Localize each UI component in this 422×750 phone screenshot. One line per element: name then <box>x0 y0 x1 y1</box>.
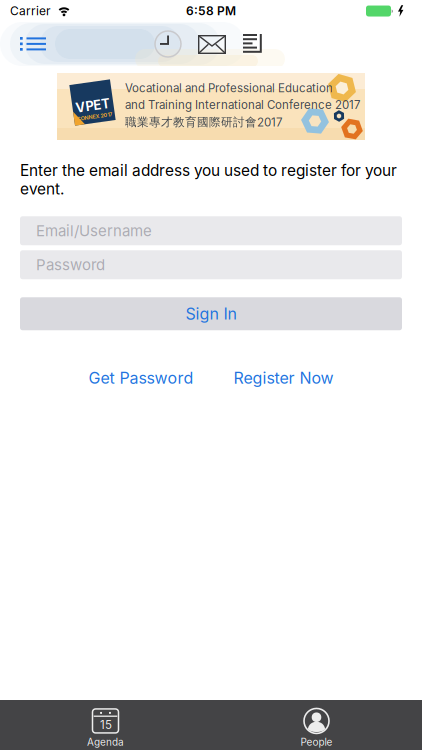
button[interactable]: Register Now <box>233 368 333 388</box>
staticText: 6:58 PM <box>186 4 236 18</box>
staticText: Email/Username <box>36 222 152 240</box>
staticText: Enter the email address you used to regi… <box>20 161 397 198</box>
staticText: 職業專才教育國際研討會2017 <box>125 115 283 129</box>
staticText: and Training International Conference 20… <box>125 98 361 112</box>
button[interactable] <box>0 22 46 52</box>
button[interactable]: Password <box>0 250 422 279</box>
button[interactable] <box>155 31 181 57</box>
staticText: VPET <box>75 98 110 113</box>
button[interactable]: Get Password <box>88 368 193 388</box>
button[interactable]: People <box>211 700 422 750</box>
button[interactable]: Email/Username <box>0 216 422 245</box>
staticText: Vocational and Professional Education <box>125 81 333 95</box>
button[interactable] <box>198 31 226 54</box>
button[interactable]: Sign In <box>0 297 422 330</box>
staticText: Carrier <box>10 4 51 18</box>
button[interactable] <box>243 31 264 54</box>
staticText: Register Now <box>233 368 333 388</box>
staticText: CONNEX 2017 <box>74 113 110 120</box>
staticText: Agenda <box>87 736 124 748</box>
staticText: Sign In <box>185 304 236 323</box>
staticText: People <box>300 736 332 748</box>
staticText: 15 <box>100 718 112 732</box>
button[interactable]: 15 <box>0 700 211 750</box>
staticText: Password <box>36 256 105 274</box>
staticText: Get Password <box>88 368 193 388</box>
